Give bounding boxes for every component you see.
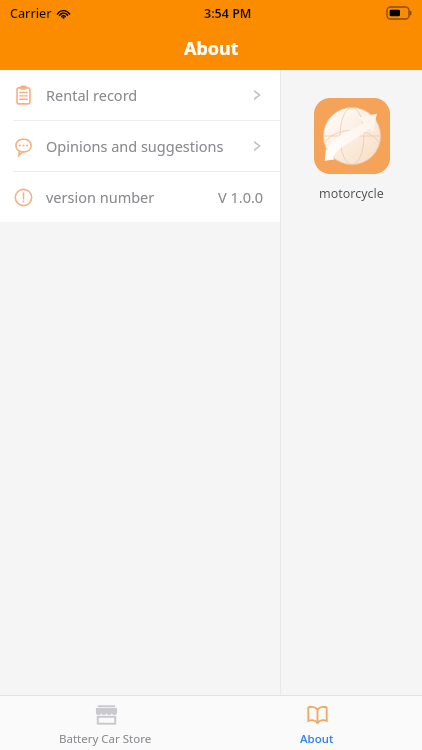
staticText: motorcycle xyxy=(319,185,384,202)
staticText: About xyxy=(300,731,334,747)
button[interactable]: Battery Car Store xyxy=(0,696,211,750)
button[interactable]: version number xyxy=(0,172,280,222)
staticText: Battery Car Store xyxy=(59,731,152,747)
staticText: 3:54 PM xyxy=(204,5,252,22)
button[interactable]: motorcycle app icon xyxy=(314,98,390,174)
staticText: Rental record xyxy=(46,85,138,105)
staticText: Carrier xyxy=(10,5,52,22)
button[interactable]: Opinions and suggestions xyxy=(0,121,280,171)
button[interactable]: About xyxy=(211,696,422,750)
staticText: Opinions and suggestions xyxy=(46,136,224,156)
button[interactable]: Rental record xyxy=(0,70,280,120)
staticText: About xyxy=(184,36,239,61)
staticText: version number xyxy=(46,187,155,207)
staticText: V 1.0.0 xyxy=(218,187,264,207)
